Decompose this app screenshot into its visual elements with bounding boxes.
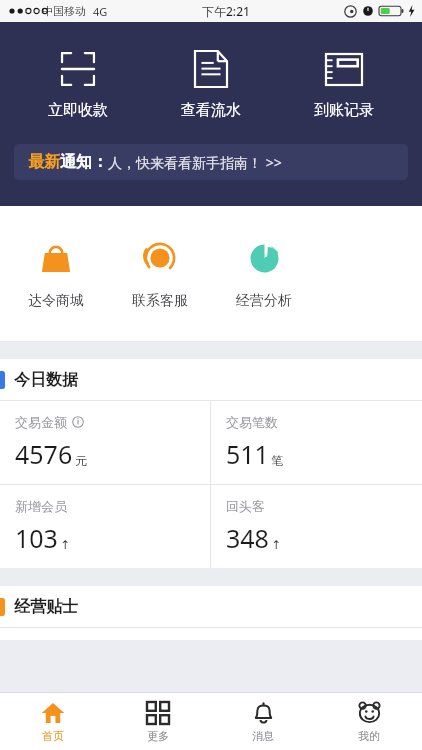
staticText: 立即收款: [48, 101, 108, 120]
staticText: 达令商城: [28, 292, 84, 310]
button[interactable]: 消息: [210, 693, 316, 750]
staticText: 交易笔数: [226, 414, 278, 430]
button[interactable]: 首页: [0, 693, 105, 750]
staticText: 查看流水: [181, 101, 241, 120]
other: 首页: [41, 701, 65, 725]
staticText: 联系客服: [132, 292, 188, 310]
staticText: 笔: [271, 453, 283, 468]
button[interactable]: 立即收款: [23, 46, 133, 122]
staticText: 今日数据: [14, 370, 78, 390]
staticText: 4G: [93, 4, 108, 19]
staticText: ↑: [271, 538, 282, 552]
button[interactable]: 更多: [105, 693, 210, 750]
staticText: 到账记录: [314, 101, 374, 120]
staticText: 下午2:21: [202, 3, 250, 19]
other: 更多: [147, 702, 169, 724]
staticText: 消息: [252, 729, 274, 743]
staticText: 经营分析: [236, 292, 292, 310]
button[interactable]: 我的: [316, 693, 422, 750]
staticText: 348: [226, 521, 269, 555]
staticText: 中国移动: [42, 4, 86, 18]
staticText: 经营贴士: [14, 597, 78, 617]
button[interactable]: 最新: [14, 144, 408, 180]
button[interactable]: 达令商城: [4, 232, 108, 316]
button[interactable]: 交易金额: [0, 401, 210, 484]
button[interactable]: 新增会员: [0, 485, 210, 568]
button[interactable]: 经营分析: [212, 232, 316, 316]
staticText: 回头客: [226, 498, 265, 514]
staticText: 元: [75, 453, 87, 468]
button[interactable]: 交易笔数: [211, 401, 422, 484]
staticText: 交易金额: [15, 414, 67, 430]
button[interactable]: 联系客服: [108, 232, 212, 316]
other: 消息: [252, 701, 275, 724]
other: 我的: [358, 701, 381, 724]
staticText: 511: [226, 437, 269, 471]
staticText: 通知：: [60, 152, 108, 172]
button[interactable]: 查看流水: [156, 46, 266, 122]
button[interactable]: 回头客: [211, 485, 422, 568]
staticText: 4576: [15, 437, 73, 471]
staticText: 更多: [147, 729, 169, 743]
staticText: 首页: [42, 729, 64, 743]
staticText: 新增会员: [15, 498, 67, 514]
staticText: 我的: [358, 729, 380, 743]
staticText: ↑: [60, 538, 71, 552]
staticText: 103: [15, 521, 58, 555]
button[interactable]: 到账记录: [289, 46, 399, 122]
staticText: 最新: [28, 152, 60, 172]
staticText: 人，快来看看新手指南！ >>: [108, 153, 282, 172]
